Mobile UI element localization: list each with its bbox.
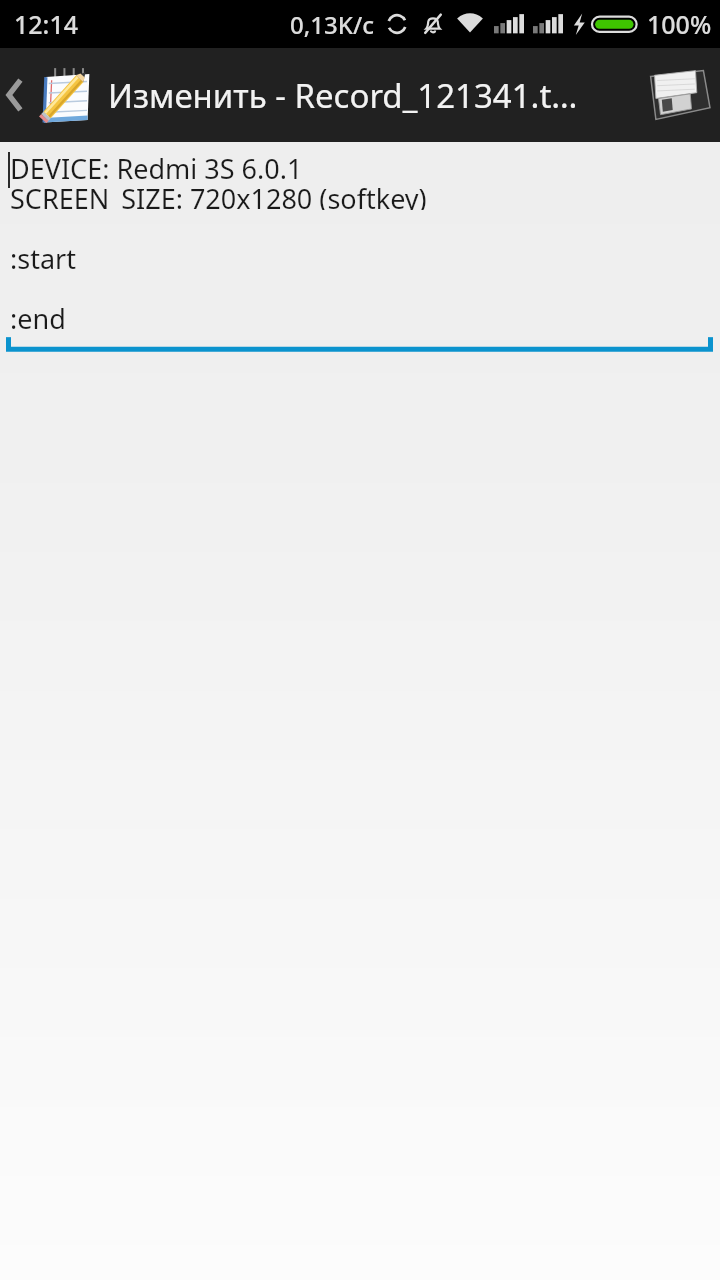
button[interactable]: Назад bbox=[0, 48, 30, 142]
staticText: :start bbox=[10, 240, 76, 270]
staticText: Изменить - Record_121341.t… bbox=[108, 73, 578, 118]
staticText: 0,13K/c bbox=[290, 8, 374, 41]
button[interactable]: DEVICE: Redmi 3S 6.0.1 bbox=[0, 142, 720, 1280]
staticText: :end bbox=[10, 300, 66, 330]
staticText: SCREEN_SIZE: 720x1280 (softkey) bbox=[10, 180, 427, 210]
staticText: 100% bbox=[647, 7, 712, 41]
button[interactable]: Сохранить bbox=[634, 48, 720, 142]
staticText: 12:14 bbox=[14, 7, 79, 41]
staticText: DEVICE: Redmi 3S 6.0.1 bbox=[10, 150, 303, 180]
